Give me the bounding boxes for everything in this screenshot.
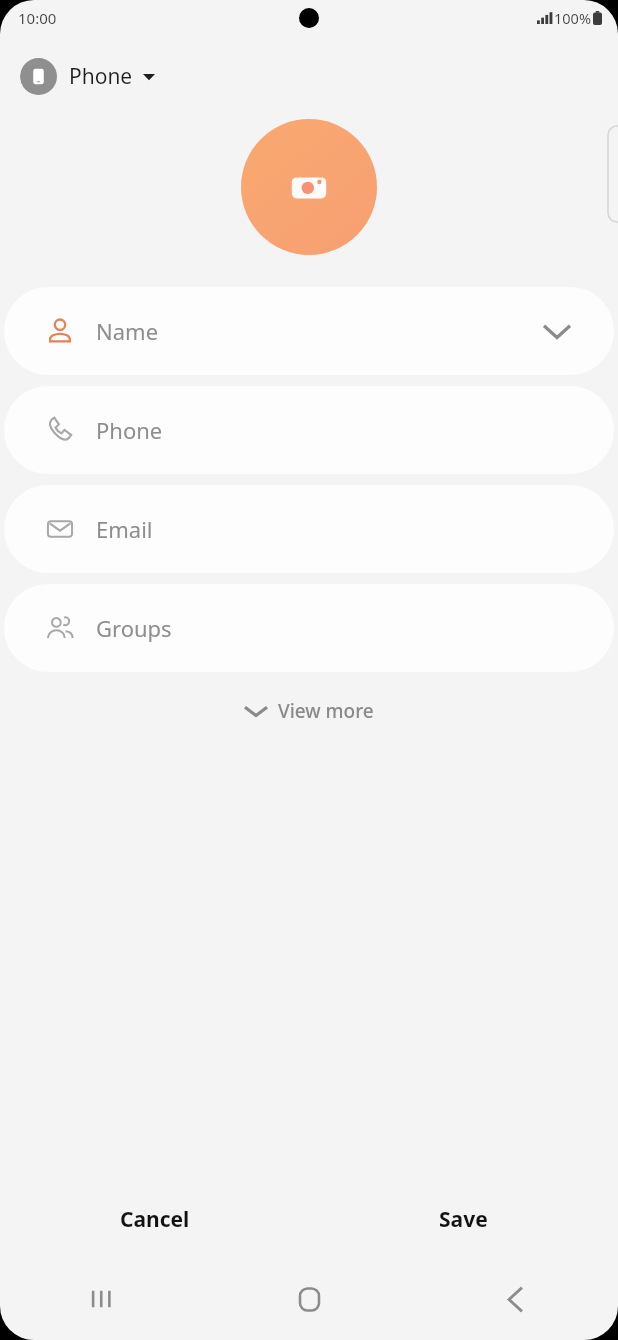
button[interactable]: Phone [4,386,614,474]
staticText: 100% [554,8,591,28]
staticText: Save [439,1205,488,1234]
button[interactable]: Email [4,485,614,573]
button[interactable]: Groups [4,584,614,672]
button[interactable]: Cancel [0,1180,309,1258]
staticText: Name [96,316,159,346]
button[interactable]: Add photo [241,119,377,255]
staticText: 10:00 [18,8,57,28]
staticText: Groups [96,613,172,643]
button[interactable]: Save [309,1180,618,1258]
button[interactable]: View more [231,690,388,732]
staticText: Email [96,514,153,544]
button[interactable]: Recent apps [0,1258,206,1340]
staticText: View more [278,698,374,724]
staticText: Phone [96,415,163,445]
staticText: Cancel [120,1205,190,1234]
button[interactable]: Home [206,1258,412,1340]
button[interactable]: Back [412,1258,618,1340]
button[interactable]: Name [4,287,614,375]
staticText: Phone [69,62,133,91]
button[interactable]: Phone [20,54,165,99]
